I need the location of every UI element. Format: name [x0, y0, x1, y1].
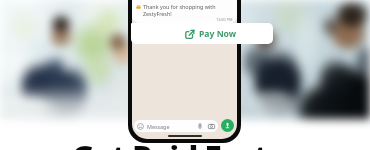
- staticText: Thank you for shopping with ZestyFresh!: [143, 3, 233, 17]
- staticText: Get Paid Faster: [71, 135, 299, 150]
- button[interactable]: Record voice message: [221, 119, 234, 132]
- button[interactable]: Pay Now: [131, 23, 273, 44]
- staticText: 12:00 PM: [216, 17, 233, 22]
- staticText: Message: [147, 123, 170, 130]
- button[interactable]: Message: [137, 120, 215, 132]
- staticText: Pay Now: [199, 28, 237, 40]
